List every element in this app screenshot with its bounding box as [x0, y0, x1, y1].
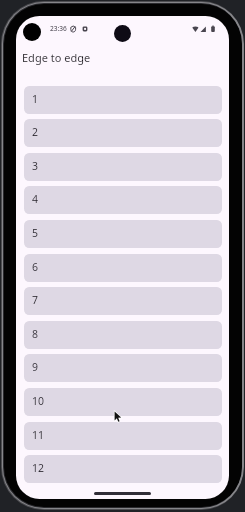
staticText: 4 [32, 192, 39, 206]
button[interactable]: 7 [24, 287, 222, 315]
staticText: 11 [32, 428, 45, 442]
staticText: 5 [32, 226, 39, 240]
button[interactable]: 2 [24, 119, 222, 147]
staticText: 12 [32, 461, 45, 475]
staticText: 7 [32, 293, 39, 307]
staticText: 10 [32, 394, 45, 408]
button[interactable]: 11 [24, 422, 222, 450]
staticText: 23:36 [50, 24, 67, 33]
staticText: Edge to edge [22, 50, 91, 65]
button[interactable]: 12 [24, 455, 222, 483]
button[interactable]: 9 [24, 354, 222, 382]
button[interactable]: 4 [24, 186, 222, 214]
button[interactable]: 3 [24, 153, 222, 181]
button[interactable]: 8 [24, 321, 222, 349]
button[interactable]: Account [23, 23, 41, 41]
staticText: 6 [32, 260, 39, 274]
staticText: 3 [32, 159, 39, 173]
button[interactable]: 5 [24, 220, 222, 248]
button[interactable]: 10 [24, 388, 222, 416]
staticText: 9 [32, 360, 39, 374]
staticText: 2 [32, 125, 39, 139]
staticText: 8 [32, 327, 39, 341]
button[interactable]: 6 [24, 254, 222, 282]
button[interactable]: 1 [24, 86, 222, 114]
staticText: 1 [32, 92, 39, 106]
